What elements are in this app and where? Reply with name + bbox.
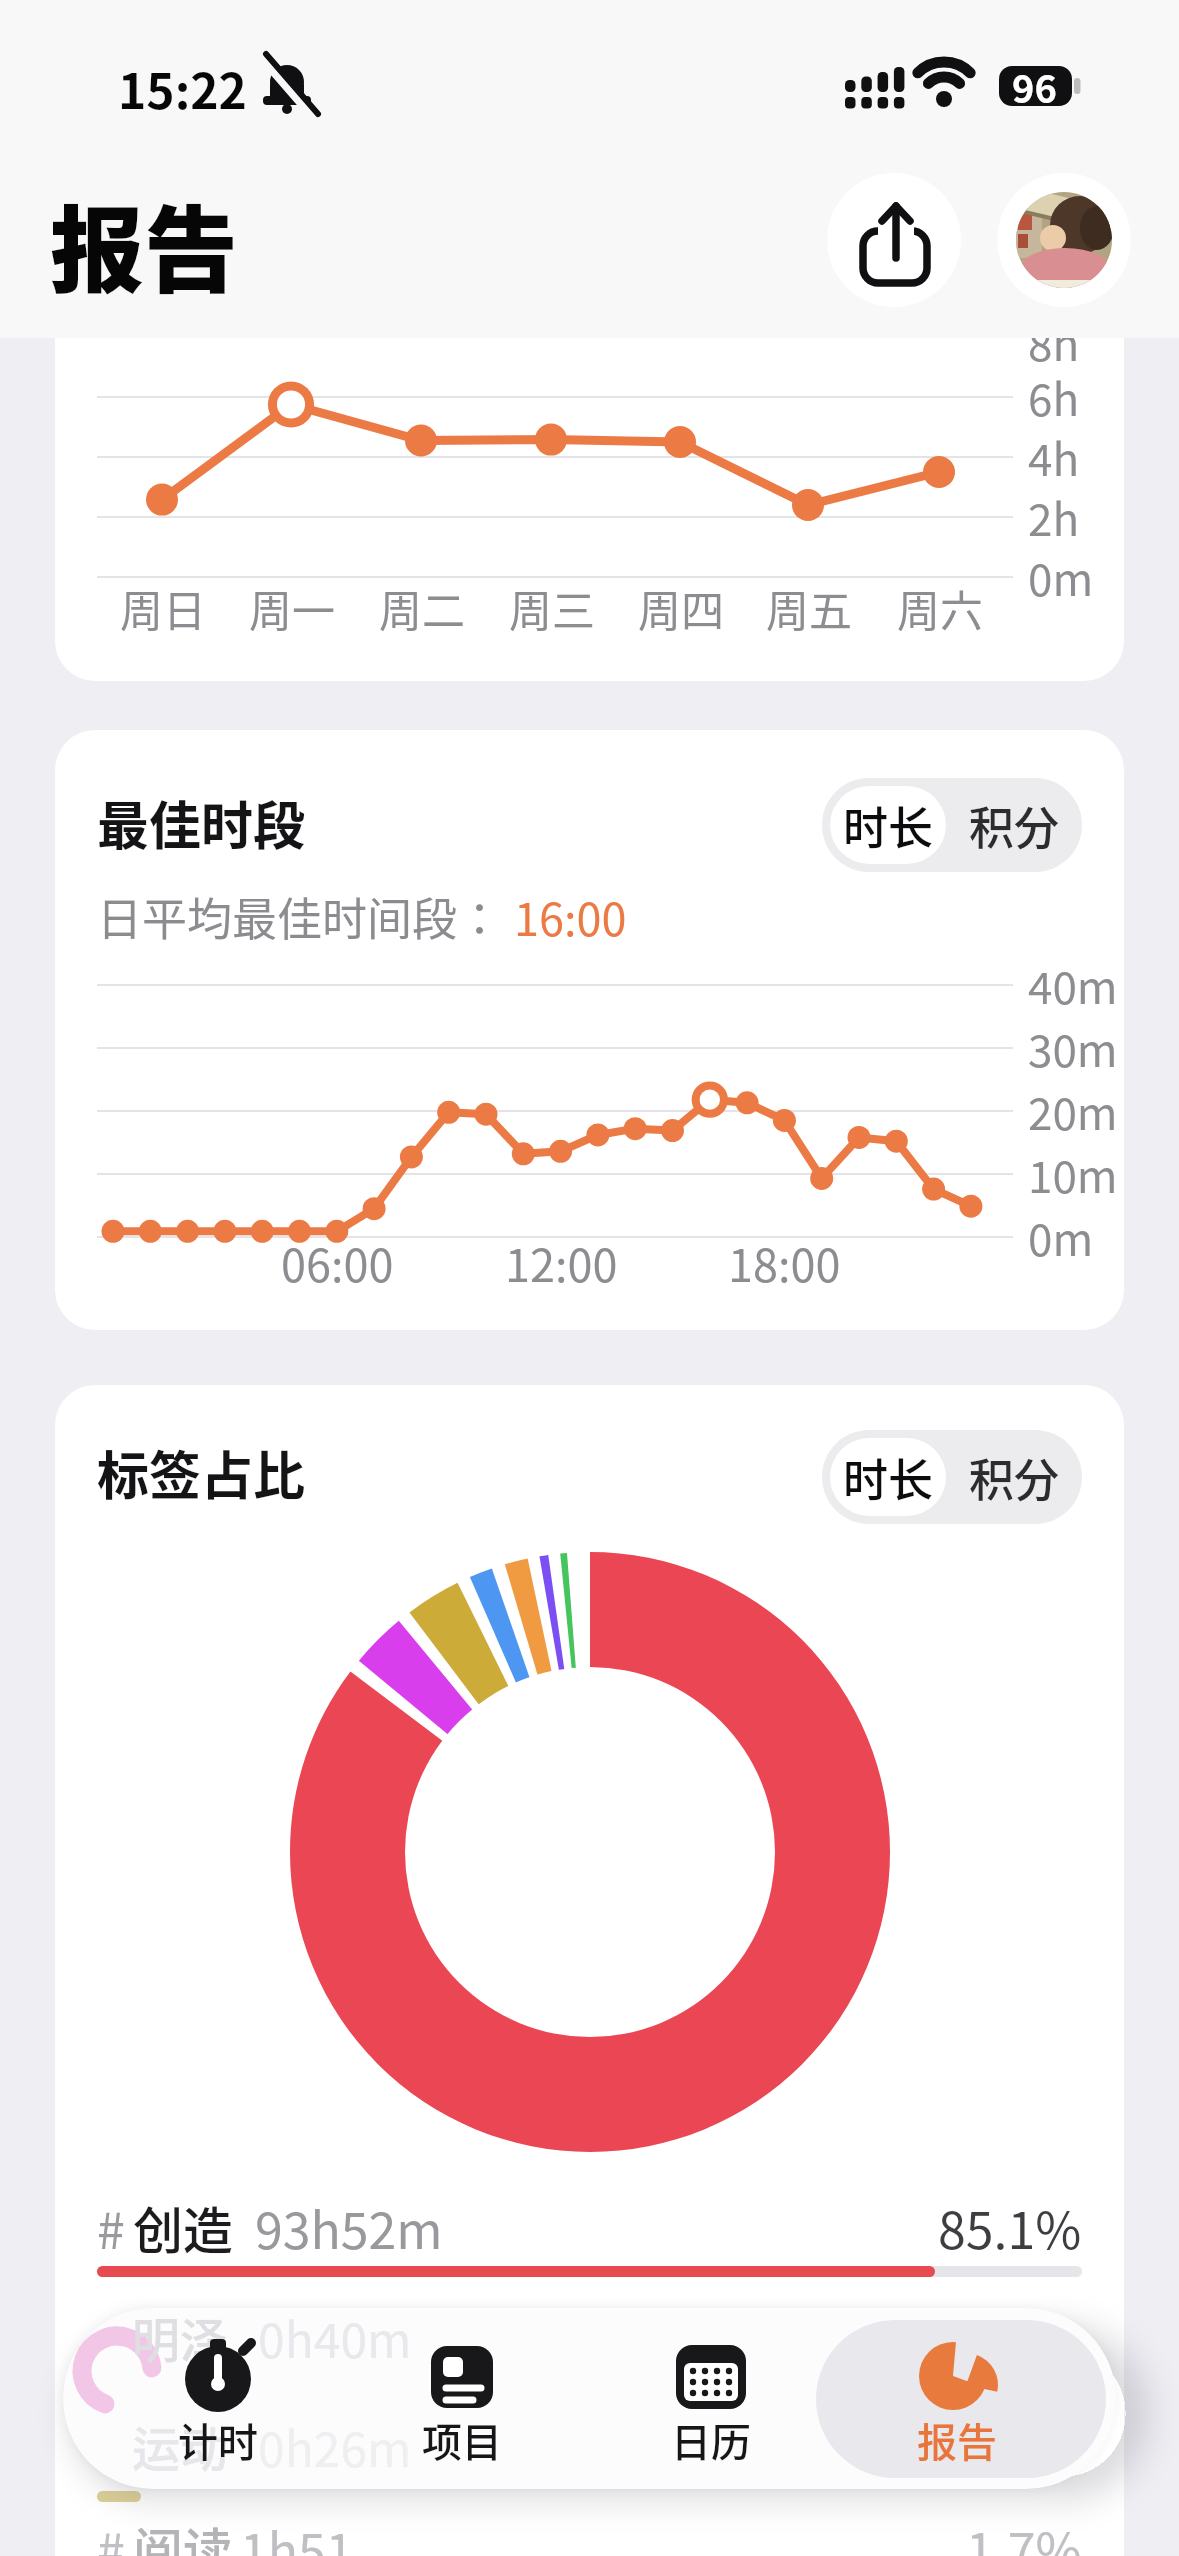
staticText: 日平均最佳时间段： xyxy=(97,884,503,949)
staticText: 周三 xyxy=(509,577,595,639)
staticText: 最佳时段 xyxy=(97,785,306,860)
staticText: 0m xyxy=(1028,1205,1094,1269)
staticText: 时长 xyxy=(843,1445,934,1510)
staticText: 积分 xyxy=(969,793,1060,858)
staticText: 8h xyxy=(1028,310,1080,374)
staticText: 30m xyxy=(1028,1016,1118,1080)
staticText: 周五 xyxy=(766,577,852,639)
staticText: 93h52m xyxy=(255,2191,443,2263)
staticText: 96 xyxy=(1012,59,1057,114)
staticText: 报告 xyxy=(50,176,239,312)
staticText: 1h51 xyxy=(240,2512,354,2556)
staticText: 06:00 xyxy=(281,1230,394,1295)
staticText: 积分 xyxy=(969,1445,1060,1510)
staticText: 0h26m xyxy=(258,2411,412,2481)
staticText: 85.1% xyxy=(938,2191,1082,2263)
staticText: 创造 xyxy=(133,2191,233,2263)
staticText: 明泽 xyxy=(132,2302,229,2372)
staticText: 周六 xyxy=(897,577,983,639)
staticText: 0m xyxy=(1028,545,1094,609)
staticText: 阅读 xyxy=(133,2512,233,2556)
staticText: 周日 xyxy=(120,577,206,639)
staticText: 项目 xyxy=(422,2411,502,2469)
staticText: 周一 xyxy=(249,577,335,639)
staticText: 15:22 xyxy=(118,53,247,123)
staticText: 时长 xyxy=(843,793,934,858)
staticText: 12:00 xyxy=(505,1230,618,1295)
staticText: 6h xyxy=(1028,365,1080,429)
staticText: 4h xyxy=(1028,425,1080,489)
staticText: 0h40m xyxy=(258,2302,412,2372)
staticText: 10m xyxy=(1028,1142,1118,1206)
staticText: 1.7% xyxy=(966,2512,1082,2556)
staticText: 16:00 xyxy=(514,884,627,949)
staticText: 40m xyxy=(1028,953,1118,1017)
staticText: 运动 xyxy=(132,2411,229,2481)
staticText: 周二 xyxy=(379,577,465,639)
staticText: # xyxy=(97,2191,125,2263)
staticText: 报告 xyxy=(917,2411,997,2469)
staticText: 2h xyxy=(1028,485,1080,549)
staticText: 20m xyxy=(1028,1079,1118,1143)
staticText: 标签占比 xyxy=(97,1435,306,1510)
staticText: 18:00 xyxy=(728,1230,841,1295)
staticText: # xyxy=(97,2512,125,2556)
staticText: 计时 xyxy=(178,2411,258,2469)
staticText: 周四 xyxy=(638,577,724,639)
staticText: 日历 xyxy=(671,2411,751,2469)
